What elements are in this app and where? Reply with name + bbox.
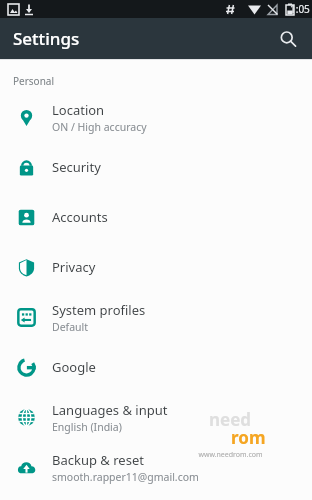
staticText: Location [52, 101, 105, 119]
button[interactable]: Backup & reset [0, 442, 312, 492]
staticText: English (India) [52, 420, 122, 434]
staticText: Languages & input [52, 401, 168, 419]
staticText: rom [231, 426, 266, 449]
staticText: Settings [13, 27, 80, 50]
button[interactable]: Security [0, 142, 312, 192]
button[interactable]: Location [0, 92, 312, 142]
staticText: smooth.rapper11@gmail.com [52, 470, 199, 484]
staticText: Personal [13, 74, 55, 88]
staticText: Default [52, 320, 89, 334]
staticText: ON / High accuracy [52, 120, 147, 134]
staticText: www.needrom.com [198, 450, 263, 460]
staticText: Privacy [52, 258, 96, 276]
staticText: Google [52, 358, 96, 376]
staticText: Security [52, 158, 101, 176]
button[interactable]: Privacy [0, 242, 312, 292]
staticText: 1:05 [290, 2, 310, 16]
button[interactable]: System profiles [0, 292, 312, 342]
staticText: need [209, 408, 252, 431]
button[interactable]: Google [0, 342, 312, 392]
button[interactable]: Search [268, 19, 308, 59]
staticText: Backup & reset [52, 451, 144, 469]
button[interactable]: Languages & input [0, 392, 312, 442]
staticText: System profiles [52, 301, 146, 319]
staticText: Accounts [52, 208, 108, 226]
button[interactable]: Accounts [0, 192, 312, 242]
